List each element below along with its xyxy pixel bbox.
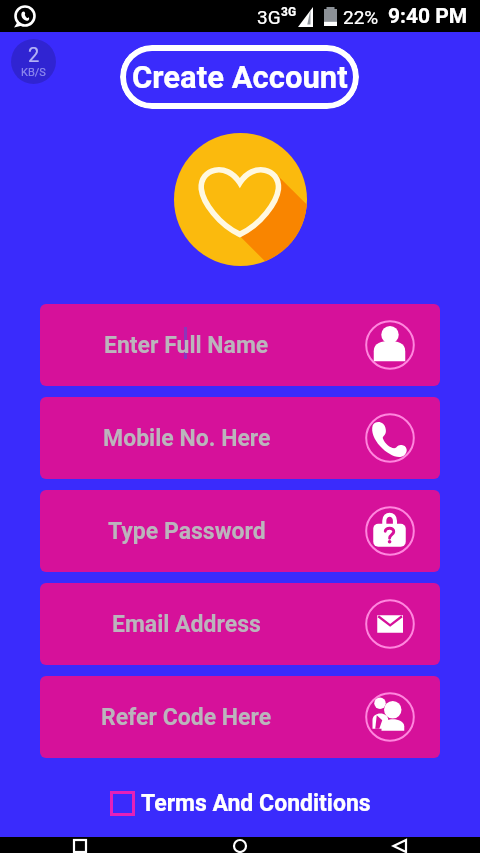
other: Full name: [365, 320, 415, 370]
other: Refer code: [365, 692, 415, 742]
button[interactable]: Email Address: [40, 583, 440, 665]
button[interactable]: Create Account: [120, 45, 359, 109]
button[interactable]: Refer Code Here: [40, 676, 440, 758]
staticText: Type Password: [108, 518, 266, 545]
button[interactable]: Back: [388, 837, 412, 853]
button[interactable]: Enter Full Name: [40, 304, 440, 386]
other: Mobile number: [365, 413, 415, 463]
staticText: Enter Full Name: [104, 332, 269, 359]
staticText: KB/S: [21, 66, 46, 79]
staticText: Refer Code Here: [101, 704, 272, 731]
staticText: Mobile No. Here: [103, 425, 271, 452]
other: Password: [365, 506, 415, 556]
staticText: Email Address: [112, 611, 261, 638]
button[interactable]: Home: [228, 837, 252, 853]
staticText: 22%: [343, 6, 379, 28]
staticText: Terms And Conditions: [141, 790, 371, 817]
staticText: 3G: [281, 5, 297, 19]
button[interactable]: Mobile No. Here: [40, 397, 440, 479]
button[interactable]: Recents: [68, 837, 92, 853]
staticText: 3G: [257, 6, 281, 28]
button[interactable]: Terms And Conditions: [0, 790, 480, 817]
other: Email address: [365, 599, 415, 649]
staticText: 2: [28, 43, 40, 66]
staticText: Create Account: [132, 59, 348, 95]
staticText: 9:40 PM: [388, 4, 468, 29]
button[interactable]: Type Password: [40, 490, 440, 572]
